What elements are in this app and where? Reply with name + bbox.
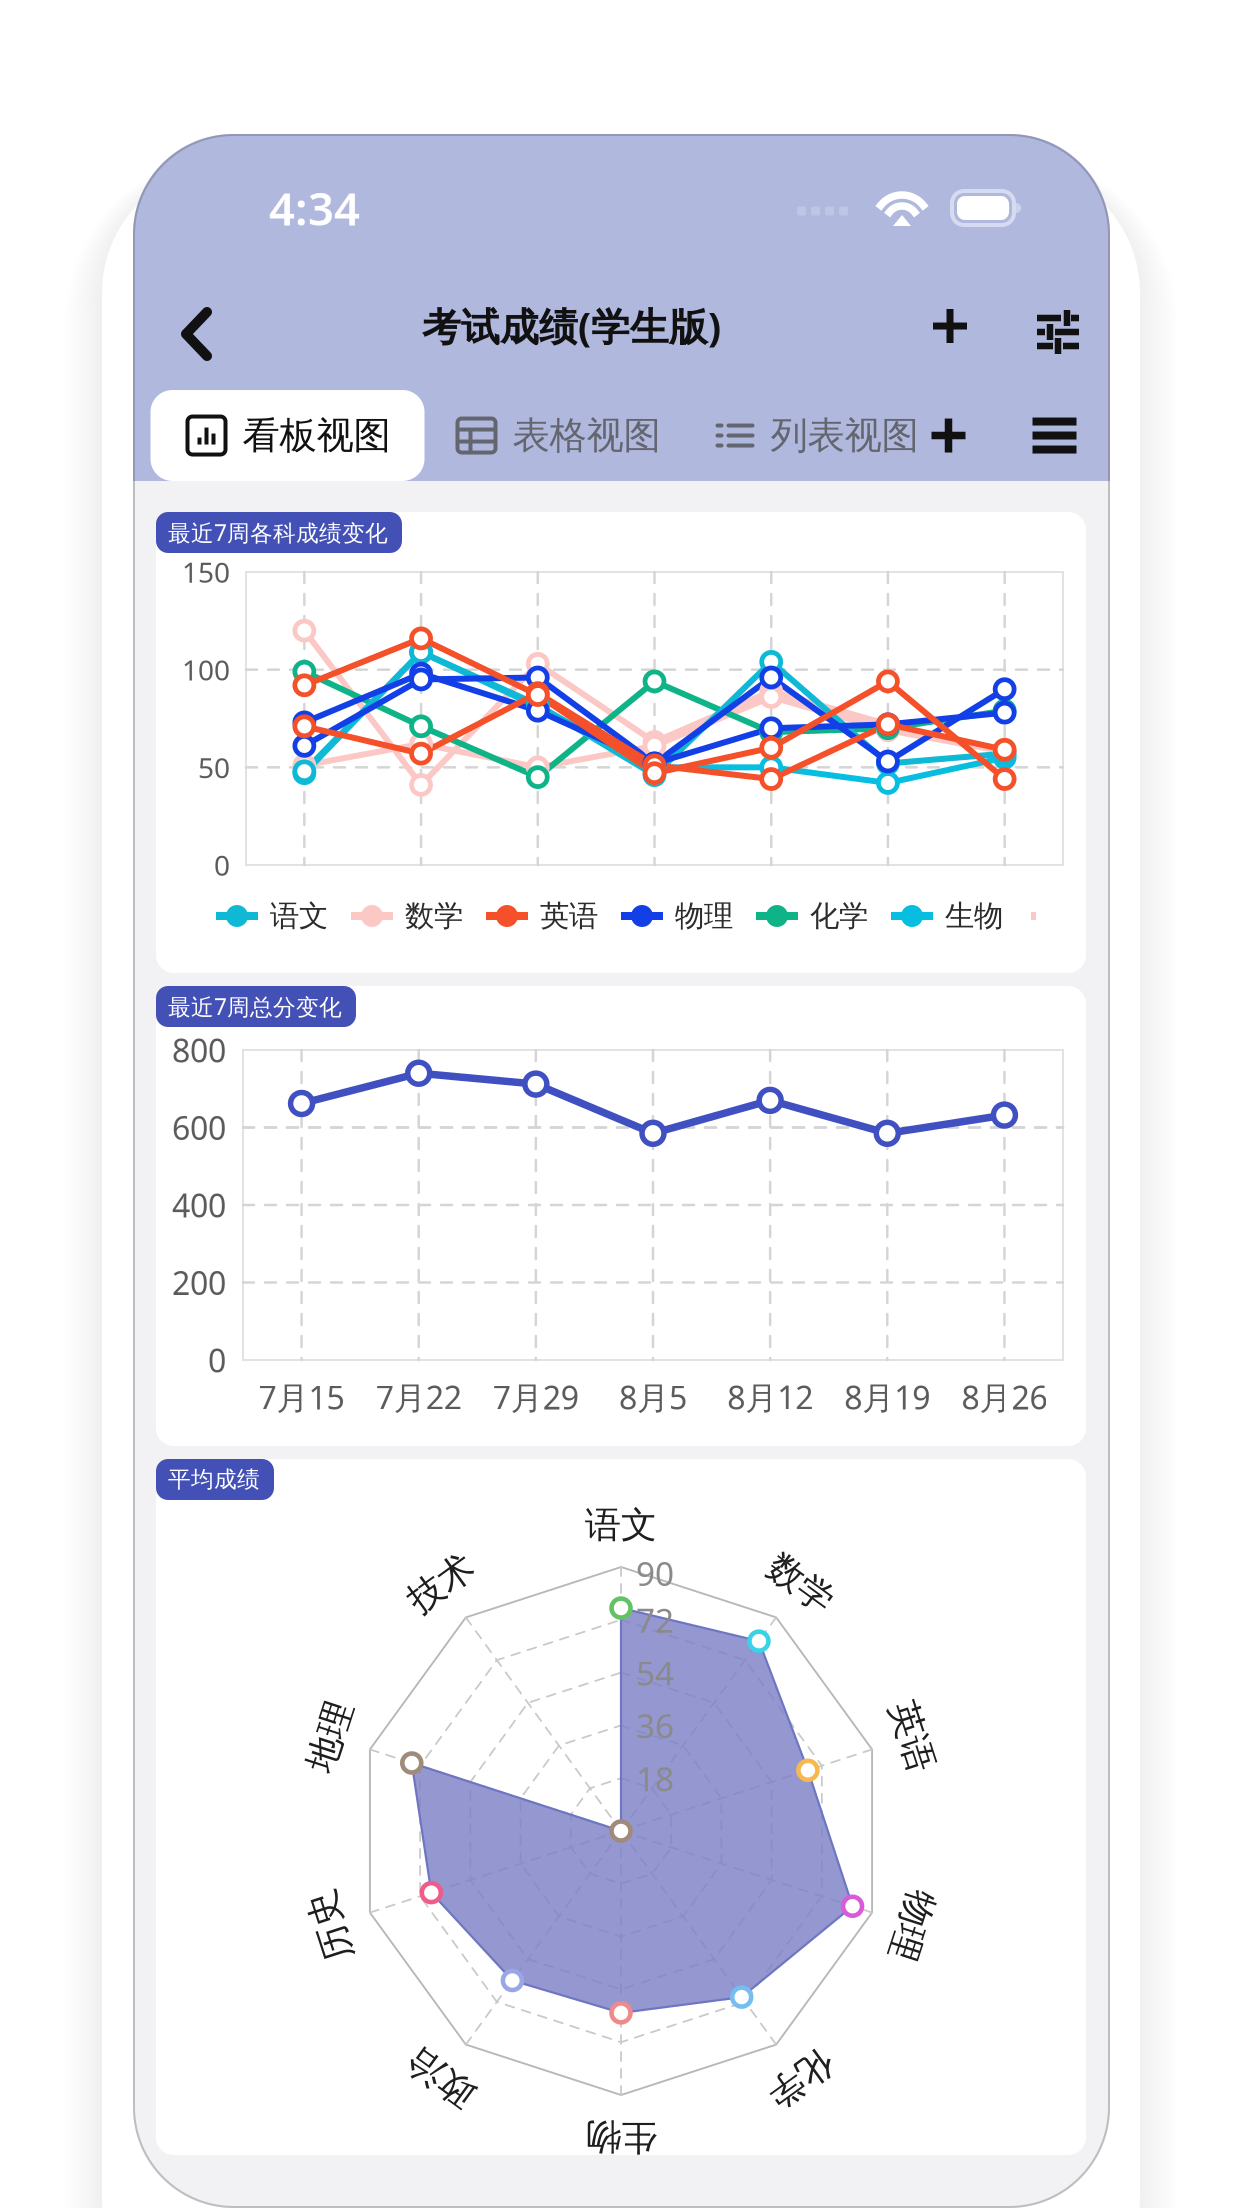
button[interactable]: Back (145, 272, 237, 380)
staticText: 考试成绩(学生版) (422, 300, 721, 352)
staticText: 平均成绩 (168, 1466, 260, 1493)
button[interactable]: 表格视图 (424, 390, 690, 481)
staticText: 50 (198, 749, 230, 786)
staticText: 表格视图 (512, 413, 660, 458)
staticText: 英语 (876, 1714, 948, 1758)
staticText: 最近7周各科成绩变化 (168, 517, 388, 547)
staticText: 最近7周总分变化 (168, 991, 342, 1021)
staticText: 8月5 (619, 1376, 687, 1418)
staticText: 0 (214, 846, 230, 884)
staticText: 历史 (294, 1903, 366, 1948)
staticText: 90 (636, 1551, 674, 1595)
staticText: 8月26 (961, 1376, 1047, 1418)
staticText: 语文 (585, 1503, 657, 1547)
staticText: 数学 (405, 898, 463, 934)
staticText: 36 (636, 1703, 674, 1748)
staticText: 0 (208, 1339, 226, 1381)
staticText: 化学 (765, 2056, 837, 2101)
staticText: 8月12 (727, 1376, 813, 1418)
staticText: 54 (636, 1650, 674, 1695)
button[interactable]: 列表视图 (690, 390, 918, 481)
button[interactable]: Add (906, 292, 994, 360)
staticText: 800 (172, 1029, 226, 1071)
staticText: 生物 (945, 898, 1003, 934)
staticText: 200 (172, 1261, 226, 1304)
staticText: 72 (636, 1598, 674, 1642)
staticText: 600 (172, 1106, 226, 1149)
staticText: 7月29 (493, 1376, 579, 1418)
staticText: 150 (182, 553, 230, 591)
staticText: 生物 (585, 2115, 657, 2159)
staticText: 4:34 (269, 178, 360, 238)
button[interactable]: 看板视图 (150, 390, 424, 481)
staticText: 8月19 (844, 1376, 930, 1418)
staticText: 数学 (765, 1561, 837, 1605)
staticText: 化学 (810, 898, 868, 934)
staticText: 100 (182, 651, 230, 688)
button[interactable]: Menu (1002, 390, 1106, 481)
staticText: 列表视图 (770, 413, 918, 458)
staticText: 看板视图 (242, 413, 390, 458)
staticText: 物理 (876, 1903, 948, 1948)
staticText: 7月15 (259, 1376, 345, 1418)
staticText: 18 (636, 1756, 674, 1800)
staticText: 政治 (405, 2056, 477, 2101)
staticText: 语文 (270, 898, 328, 934)
staticText: 地理 (294, 1714, 366, 1758)
staticText: 400 (172, 1184, 226, 1226)
staticText: 7月22 (376, 1376, 462, 1418)
staticText: 物理 (675, 898, 733, 934)
button[interactable]: Add view (918, 390, 1002, 481)
staticText: 技术 (405, 1561, 477, 1605)
staticText: 英语 (540, 898, 598, 934)
button[interactable]: Settings (994, 292, 1098, 360)
